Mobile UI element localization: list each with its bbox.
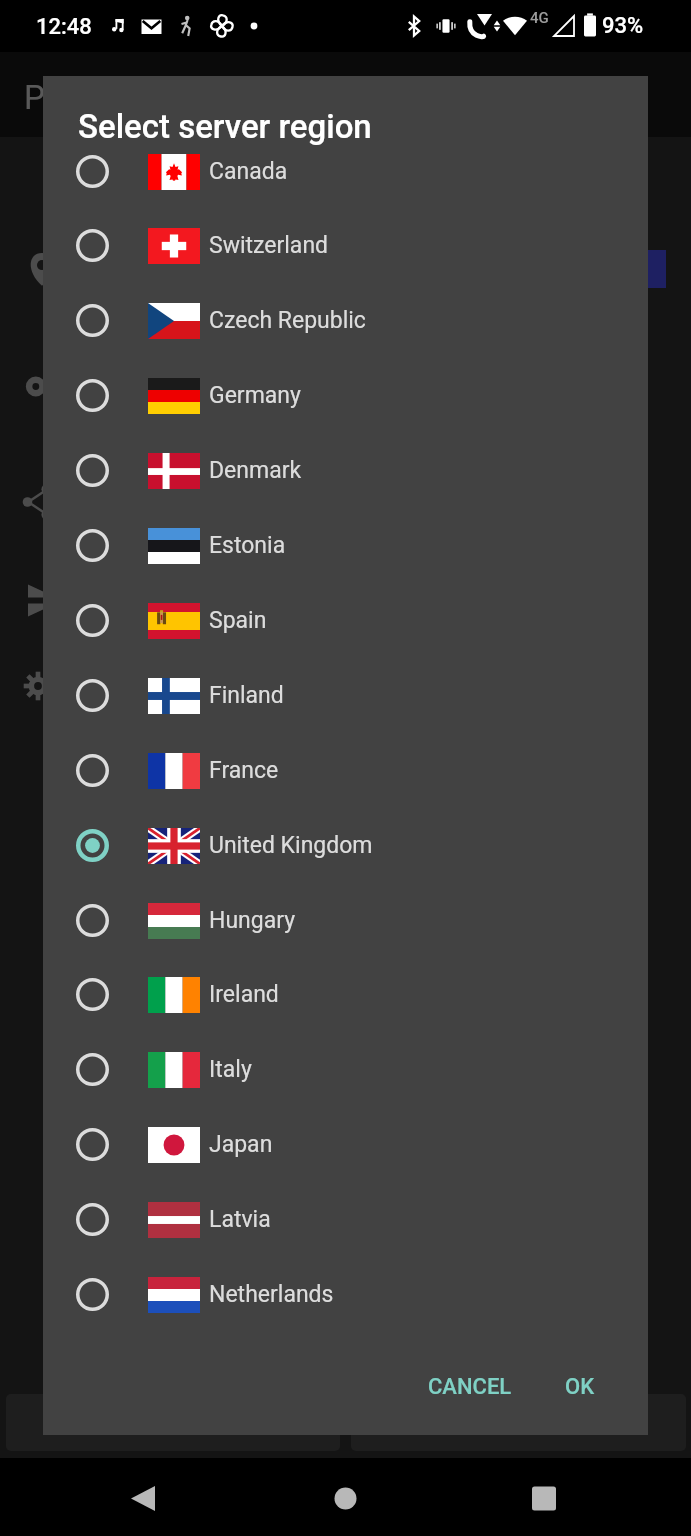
button[interactable]: Czech Republic <box>43 283 648 358</box>
button[interactable]: Spain <box>43 583 648 658</box>
button[interactable]: Finland <box>43 658 648 733</box>
staticText: 93% <box>602 13 644 39</box>
button[interactable]: Italy <box>43 1032 648 1107</box>
staticText: Japan <box>209 1131 273 1158</box>
staticText: France <box>209 757 279 784</box>
staticText: Germany <box>209 382 301 409</box>
button[interactable]: OK <box>549 1362 611 1412</box>
button[interactable]: Home <box>303 1458 389 1536</box>
button[interactable]: CANCEL <box>412 1362 528 1412</box>
staticText: Spain <box>209 607 267 634</box>
staticText: Estonia <box>209 532 286 559</box>
button[interactable]: Japan <box>43 1107 648 1182</box>
staticText: Ireland <box>209 981 279 1008</box>
staticText: OK <box>565 1374 595 1400</box>
staticText: ProtonVPN <box>24 78 188 117</box>
button[interactable]: Hungary <box>43 883 648 958</box>
staticText: Latvia <box>209 1206 271 1233</box>
button[interactable]: Ireland <box>43 957 648 1032</box>
staticText: Canada <box>209 158 288 185</box>
button[interactable]: Latvia <box>43 1182 648 1257</box>
button[interactable]: France <box>43 733 648 808</box>
staticText: United Kingdom <box>209 832 373 859</box>
button[interactable]: Back <box>100 1458 186 1536</box>
staticText: Italy <box>209 1056 252 1083</box>
button[interactable] <box>351 1394 686 1451</box>
staticText: CANCEL <box>428 1374 512 1400</box>
staticText: Denmark <box>209 457 302 484</box>
staticText: 12:48 <box>36 14 92 40</box>
button[interactable]: Estonia <box>43 508 648 583</box>
staticText: Finland <box>209 682 284 709</box>
staticText: Hungary <box>209 907 296 934</box>
button[interactable]: Switzerland <box>43 208 648 283</box>
staticText: Select server region <box>78 107 372 146</box>
staticText: 4G <box>530 9 549 27</box>
button[interactable]: Denmark <box>43 433 648 508</box>
button[interactable]: Canada <box>43 134 648 209</box>
button[interactable]: Netherlands <box>43 1257 648 1332</box>
staticText: Netherlands <box>209 1281 334 1308</box>
button[interactable] <box>6 1394 340 1451</box>
button[interactable]: Recent apps <box>501 1458 587 1536</box>
staticText: Switzerland <box>209 232 329 259</box>
button[interactable]: Germany <box>43 358 648 433</box>
staticText: Czech Republic <box>209 307 366 334</box>
button[interactable]: United Kingdom <box>43 808 648 883</box>
